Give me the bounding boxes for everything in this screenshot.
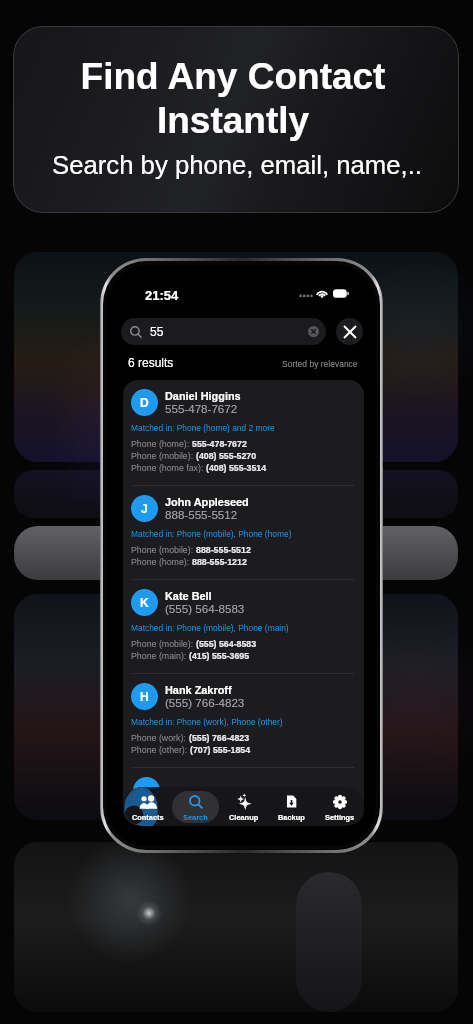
button[interactable]: Cleanup [220, 791, 267, 823]
staticText: 21:54 [145, 288, 179, 303]
staticText: D [140, 396, 149, 409]
staticText: Find Any Contact Instantly [13, 56, 456, 141]
staticText: Matched in: Phone (mobile), Phone (main) [131, 623, 289, 632]
staticText: Contacts [132, 813, 164, 821]
staticText: Daniel Higgins [165, 390, 241, 402]
button[interactable]: Clear search [308, 326, 319, 337]
staticText: Phone (home fax): [131, 463, 206, 473]
staticText: 55 [150, 325, 164, 338]
staticText: 888-555-1212 [192, 557, 247, 567]
button[interactable]: K [123, 580, 364, 673]
staticText: (408) 555-3514 [206, 463, 267, 473]
staticText: Kate Bell [165, 590, 212, 602]
button[interactable]: Search [172, 791, 219, 823]
staticText: Sorted by relevance [282, 359, 358, 368]
button[interactable]: D [123, 380, 364, 485]
staticText: (408) 555-5270 [196, 451, 257, 461]
staticText: Phone (work): [131, 733, 189, 743]
staticText: Matched in: Phone (home) and 2 more [131, 423, 275, 432]
button[interactable]: Settings [316, 791, 363, 823]
staticText: Phone (main): [131, 651, 189, 661]
staticText: (415) 555-3695 [189, 651, 250, 661]
staticText: (555) 766-4823 [189, 733, 250, 743]
staticText: Search by phone, email, name,.. [14, 151, 459, 180]
staticText: Search [183, 813, 208, 821]
staticText: K [140, 596, 149, 609]
staticText: 555-478-7672 [165, 402, 238, 415]
staticText: Phone (other): [131, 745, 190, 755]
staticText: 888-555-5512 [196, 545, 251, 555]
staticText: Matched in: Phone (mobile), Phone (home) [131, 529, 292, 538]
staticText: Matched in: Phone (work), Phone (other) [131, 717, 283, 726]
staticText: Phone (home): [131, 439, 192, 449]
button[interactable]: 55 [121, 318, 326, 345]
staticText: (555) 564-8583 [165, 602, 245, 615]
staticText: Phone (home): [131, 557, 192, 567]
staticText: Phone (mobile): [131, 639, 196, 649]
staticText: Backup [278, 813, 305, 821]
staticText: (555) 564-8583 [196, 639, 257, 649]
staticText: H [140, 690, 149, 703]
staticText: J [141, 502, 148, 515]
button[interactable]: H [123, 674, 364, 767]
button[interactable]: Close [336, 318, 363, 345]
staticText: (707) 555-1854 [190, 745, 251, 755]
button[interactable]: Contacts [124, 791, 171, 823]
button[interactable]: J [123, 486, 364, 579]
staticText: Settings [325, 813, 355, 821]
staticText: Hank Zakroff [165, 684, 232, 696]
staticText: 888-555-5512 [165, 508, 238, 521]
staticText: 6 results [128, 356, 174, 369]
staticText: (555) 766-4823 [165, 696, 245, 709]
staticText: Cleanup [229, 813, 259, 821]
staticText: Phone (mobile): [131, 451, 196, 461]
staticText: John Appleseed [165, 496, 249, 508]
button[interactable]: Backup [268, 791, 315, 823]
staticText: Phone (mobile): [131, 545, 196, 555]
staticText: 555-478-7672 [192, 439, 247, 449]
